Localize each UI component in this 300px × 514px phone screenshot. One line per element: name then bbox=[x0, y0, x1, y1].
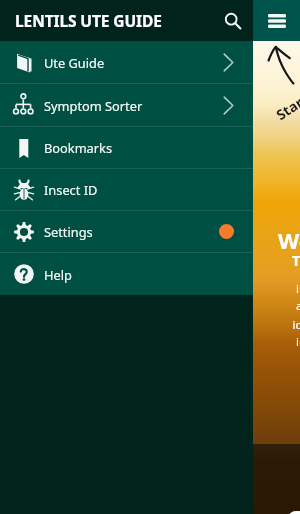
staticText: Symptom Sorter bbox=[44, 97, 143, 114]
staticText: LENTILS UTE GUIDE bbox=[15, 10, 162, 31]
button[interactable]: Open navigation menu bbox=[258, 2, 296, 40]
staticText: identification bbox=[178, 317, 300, 333]
staticText: The GRDC bbox=[178, 250, 300, 270]
button[interactable]: Help bbox=[0, 253, 253, 295]
staticText: Settings bbox=[44, 223, 93, 240]
staticText: information bbox=[178, 281, 300, 297]
staticText: Help bbox=[44, 266, 72, 283]
staticText: and disease bbox=[178, 298, 300, 314]
button[interactable]: Settings bbox=[0, 211, 253, 252]
staticText: Ute Guide bbox=[44, 54, 105, 71]
button[interactable]: Close navigation drawer bbox=[0, 0, 253, 514]
button[interactable]: Insect ID bbox=[0, 169, 253, 210]
staticText: Welcome bbox=[178, 225, 300, 255]
staticText: Start here bbox=[272, 70, 300, 124]
staticText: information bbox=[178, 334, 300, 350]
button[interactable]: Symptom Sorter bbox=[0, 84, 253, 126]
button[interactable]: Search bbox=[214, 2, 252, 40]
button[interactable]: Bookmarks bbox=[0, 127, 253, 168]
button[interactable]: Ute Guide bbox=[0, 41, 253, 83]
staticText: GRDC bbox=[286, 501, 300, 514]
staticText: Insect ID bbox=[44, 181, 98, 198]
staticText: Bookmarks bbox=[44, 139, 113, 156]
